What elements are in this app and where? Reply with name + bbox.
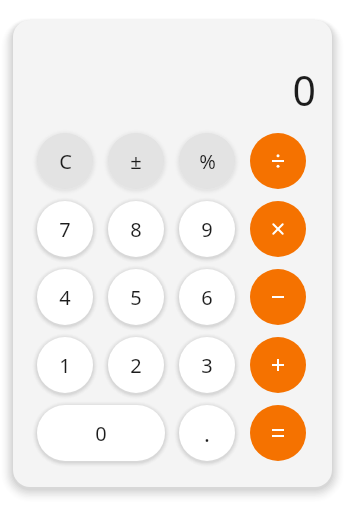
staticText: C bbox=[59, 148, 72, 175]
button[interactable]: 6 bbox=[179, 269, 235, 325]
button[interactable]: ± bbox=[108, 133, 164, 189]
button[interactable]: 0 bbox=[37, 405, 165, 461]
button[interactable]: % bbox=[179, 133, 235, 189]
button[interactable]: Add bbox=[250, 337, 306, 393]
staticText: 5 bbox=[130, 284, 142, 311]
button[interactable]: 3 bbox=[179, 337, 235, 393]
staticText: 8 bbox=[130, 216, 142, 243]
button[interactable]: 4 bbox=[37, 269, 93, 325]
button[interactable]: 2 bbox=[108, 337, 164, 393]
staticText: 1 bbox=[59, 352, 71, 379]
button[interactable]: 5 bbox=[108, 269, 164, 325]
staticText: 2 bbox=[130, 352, 142, 379]
button[interactable]: Subtract bbox=[250, 269, 306, 325]
staticText: 6 bbox=[201, 284, 213, 311]
staticText: 7 bbox=[59, 216, 71, 243]
button[interactable]: C bbox=[37, 133, 93, 189]
button[interactable]: Divide bbox=[250, 133, 306, 189]
button[interactable]: Equals bbox=[250, 405, 306, 461]
staticText: 4 bbox=[59, 284, 71, 311]
staticText: 0 bbox=[95, 420, 107, 447]
button[interactable]: 1 bbox=[37, 337, 93, 393]
button[interactable]: 7 bbox=[37, 201, 93, 257]
button[interactable]: 8 bbox=[108, 201, 164, 257]
button[interactable]: . bbox=[179, 405, 235, 461]
button[interactable]: Multiply bbox=[250, 201, 306, 257]
staticText: 3 bbox=[201, 352, 213, 379]
staticText: . bbox=[204, 418, 210, 448]
button[interactable]: 9 bbox=[179, 201, 235, 257]
staticText: % bbox=[199, 148, 216, 175]
staticText: 9 bbox=[201, 216, 213, 243]
staticText: 0 bbox=[292, 62, 316, 110]
staticText: ± bbox=[130, 148, 142, 175]
